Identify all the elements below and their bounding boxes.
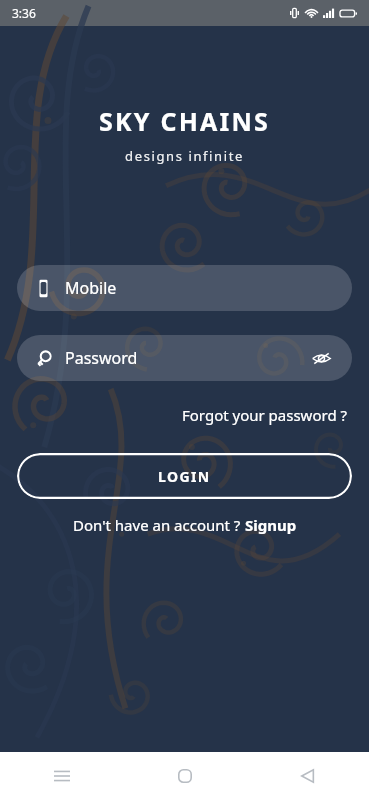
staticText: Forgot your password ? [182, 405, 348, 425]
button[interactable]: Mobile [17, 265, 352, 311]
button[interactable]: LOGIN [17, 453, 352, 499]
button[interactable]: Show password [306, 343, 336, 373]
staticText: Mobile [65, 277, 117, 299]
staticText: designs infinite [17, 147, 352, 165]
staticText: Signup [245, 515, 297, 535]
staticText: Don't have an account ? [73, 515, 245, 535]
button[interactable]: Password [17, 335, 352, 381]
button[interactable]: Don't have an account ? [17, 515, 352, 535]
staticText: LOGIN [158, 467, 211, 486]
button[interactable]: Recents [0, 752, 123, 800]
staticText: 3:36 [12, 5, 36, 21]
staticText: SKY CHAINS [17, 104, 352, 138]
button[interactable]: Back [246, 752, 369, 800]
button[interactable]: Forgot your password ? [178, 401, 352, 429]
button[interactable]: Home [123, 752, 246, 800]
staticText: Password [65, 347, 138, 369]
